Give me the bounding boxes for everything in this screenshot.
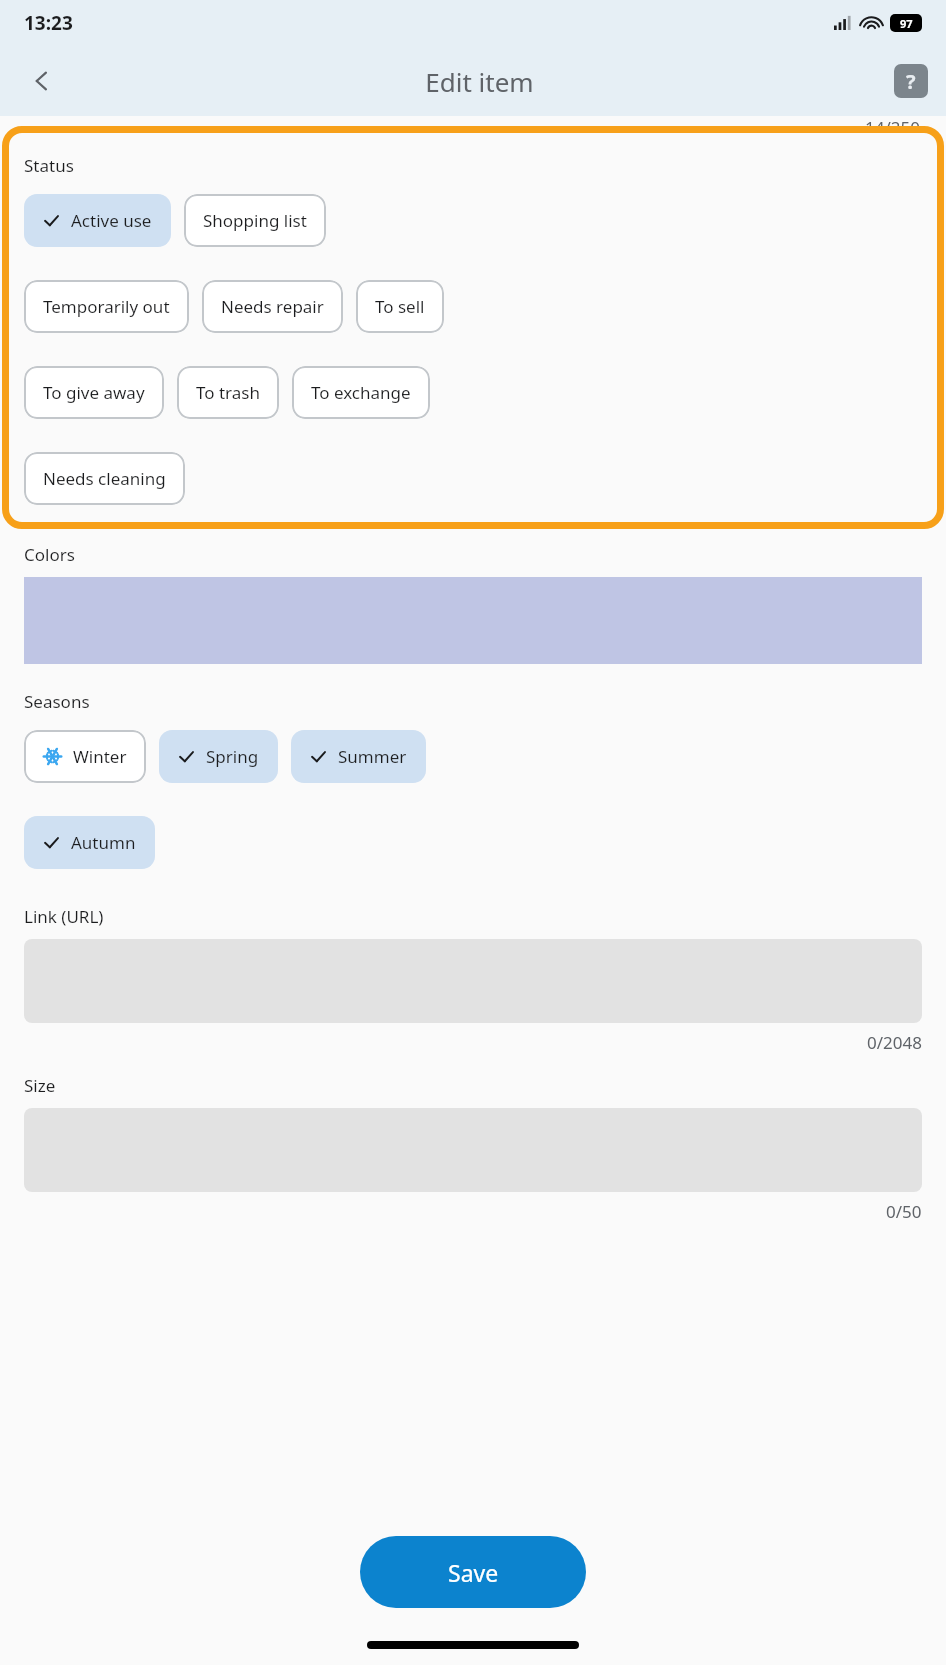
staticText: To trash xyxy=(196,381,260,404)
staticText: Winter xyxy=(73,745,127,768)
button[interactable]: Temporarily out xyxy=(24,280,189,333)
button[interactable]: To trash xyxy=(177,366,279,419)
button[interactable]: To sell xyxy=(356,280,444,333)
button[interactable]: Spring xyxy=(159,730,278,783)
button[interactable]: Summer xyxy=(291,730,426,783)
staticText: Autumn xyxy=(71,831,136,854)
staticText: Active use xyxy=(71,209,152,232)
button[interactable]: Save xyxy=(360,1536,586,1608)
button[interactable]: Winter xyxy=(24,730,146,783)
staticText: 13:23 xyxy=(24,10,73,36)
button[interactable]: Shopping list xyxy=(184,194,326,247)
staticText: Status xyxy=(24,154,74,177)
staticText: Spring xyxy=(206,745,259,768)
staticText: Needs cleaning xyxy=(43,467,166,490)
staticText: To give away xyxy=(43,381,145,404)
staticText: 0/50 xyxy=(886,1200,922,1223)
button[interactable]: Help xyxy=(894,64,928,98)
staticText: Seasons xyxy=(24,690,90,713)
staticText: Size xyxy=(24,1074,56,1097)
staticText: Shopping list xyxy=(203,209,307,232)
staticText: Summer xyxy=(338,745,407,768)
button[interactable]: Active use xyxy=(24,194,171,247)
staticText: Colors xyxy=(24,543,75,566)
staticText: 14/250 xyxy=(865,116,920,126)
button[interactable]: Back xyxy=(18,57,66,105)
button[interactable]: To exchange xyxy=(292,366,430,419)
staticText: To exchange xyxy=(311,381,411,404)
staticText: 97 xyxy=(900,16,913,31)
staticText: 0/2048 xyxy=(867,1031,922,1054)
staticText: To sell xyxy=(375,295,425,318)
button[interactable]: Needs repair xyxy=(202,280,343,333)
staticText: Save xyxy=(448,1557,499,1588)
button[interactable]: Autumn xyxy=(24,816,155,869)
staticText: Temporarily out xyxy=(43,295,170,318)
staticText: Needs repair xyxy=(221,295,324,318)
staticText: Edit item xyxy=(425,64,534,99)
button[interactable]: To give away xyxy=(24,366,164,419)
staticText: ? xyxy=(906,68,916,95)
staticText: Link (URL) xyxy=(24,905,104,928)
button[interactable]: Needs cleaning xyxy=(24,452,185,505)
